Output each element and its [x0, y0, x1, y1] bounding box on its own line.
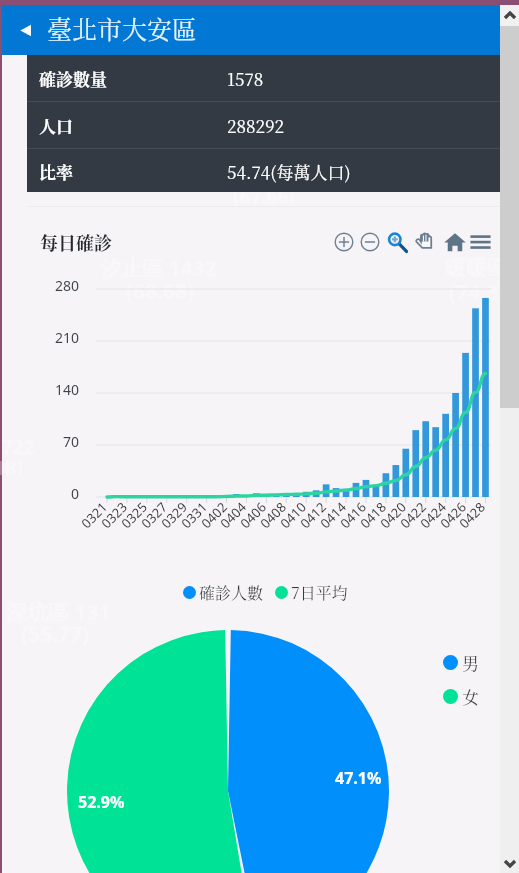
button[interactable]: Zoom out — [360, 232, 380, 252]
button[interactable]: Menu — [470, 232, 491, 253]
button[interactable]: Zoom in — [334, 232, 354, 252]
staticText: 確診數量 — [39, 66, 107, 90]
button[interactable]: 男 — [443, 650, 479, 674]
button[interactable]: Selection zoom — [386, 231, 408, 253]
staticText: 0402 — [197, 498, 231, 532]
staticText: 0404 — [216, 498, 250, 532]
staticText: 7日平均 — [291, 581, 348, 604]
staticText: 280 — [39, 276, 79, 295]
button[interactable]: 比率 — [27, 149, 500, 192]
staticText: 男 — [462, 650, 479, 674]
staticText: 0416 — [336, 498, 370, 532]
staticText: (18) — [0, 455, 23, 481]
button[interactable]: 確診人數 — [183, 581, 264, 604]
staticText: 0327 — [137, 498, 171, 532]
button[interactable]: 7日平均 — [275, 581, 348, 604]
staticText: 比率 — [39, 159, 73, 183]
staticText: 0321 — [77, 498, 111, 532]
staticText: 47.1% — [335, 767, 382, 789]
staticText: 0329 — [157, 498, 191, 532]
button[interactable]: Scroll up — [500, 5, 519, 26]
button[interactable]: 人口 — [27, 102, 500, 148]
staticText: 0325 — [117, 498, 151, 532]
other: Back — [19, 24, 32, 37]
staticText: 54.74(每萬人口) — [227, 159, 351, 183]
staticText: 每日確診 — [40, 229, 112, 255]
staticText: 0406 — [236, 498, 270, 532]
staticText: 臺北市大安區 — [47, 10, 198, 46]
button[interactable]: Reset zoom — [444, 231, 466, 253]
button[interactable]: Scroll down — [500, 852, 519, 873]
staticText: 0422 — [396, 498, 430, 532]
staticText: 0418 — [356, 498, 390, 532]
staticText: 0 — [39, 484, 79, 503]
staticText: 52.9% — [78, 791, 125, 813]
staticText: 0408 — [256, 498, 290, 532]
staticText: 0420 — [376, 498, 410, 532]
staticText: 288292 — [227, 113, 284, 137]
staticText: 區 722 — [0, 434, 35, 460]
staticText: 女 — [462, 684, 479, 708]
staticText: 0323 — [97, 498, 131, 532]
button[interactable]: 女 — [443, 684, 479, 708]
staticText: 0412 — [296, 498, 330, 532]
staticText: 0426 — [436, 498, 470, 532]
button[interactable]: Back — [2, 5, 500, 55]
staticText: 0331 — [177, 498, 211, 532]
staticText: 1578 — [227, 66, 264, 90]
button[interactable]: Panning — [414, 231, 435, 252]
staticText: 確診人數 — [199, 581, 264, 604]
staticText: 人口 — [39, 113, 73, 137]
staticText: 暖暖區 — [445, 255, 508, 281]
staticText: 70 — [39, 432, 79, 451]
staticText: 0424 — [416, 498, 450, 532]
staticText: 140 — [39, 380, 79, 399]
staticText: 0428 — [455, 498, 489, 532]
staticText: 0414 — [316, 498, 350, 532]
staticText: 0410 — [276, 498, 310, 532]
button[interactable]: 確診數量 — [27, 55, 500, 101]
staticText: (67.66) — [233, 184, 295, 210]
staticText: 210 — [39, 328, 79, 347]
staticText: (74.3) — [449, 278, 506, 307]
